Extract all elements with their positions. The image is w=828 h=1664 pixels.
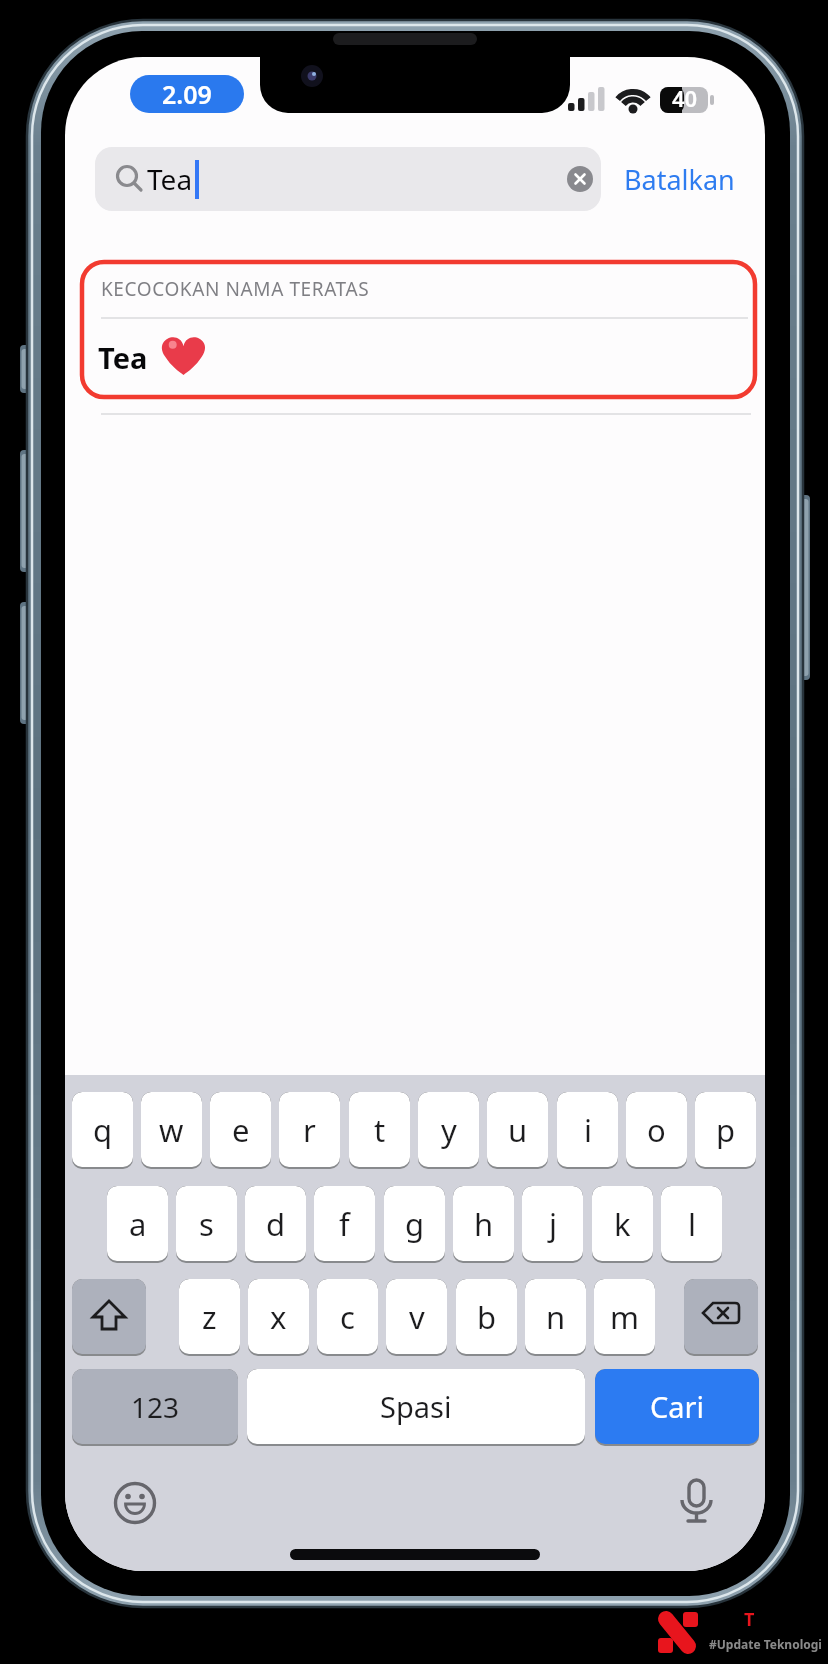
button[interactable]: a: [107, 1186, 168, 1263]
staticText: Cari: [650, 1387, 705, 1426]
staticText: KECOCOKAN NAMA TERATAS: [101, 276, 370, 302]
staticText: l: [688, 1203, 696, 1245]
button[interactable]: Spasi: [247, 1369, 585, 1446]
button[interactable]: [567, 166, 593, 192]
button[interactable]: g: [384, 1186, 445, 1263]
staticText: p: [716, 1109, 736, 1151]
staticText: w: [159, 1109, 184, 1151]
button[interactable]: Batalkan: [624, 147, 759, 211]
button[interactable]: k: [592, 1186, 653, 1263]
staticText: 123: [131, 1388, 180, 1426]
staticText: Tea: [98, 338, 148, 377]
staticText: j: [549, 1203, 557, 1245]
staticText: h: [474, 1203, 494, 1245]
button[interactable]: q: [72, 1092, 133, 1169]
staticText: c: [340, 1296, 355, 1338]
staticText: Batalkan: [624, 161, 735, 198]
button[interactable]: x: [248, 1279, 309, 1356]
button[interactable]: 123: [72, 1369, 238, 1446]
button[interactable]: l: [661, 1186, 722, 1263]
staticText: i: [584, 1109, 592, 1151]
button[interactable]: d: [245, 1186, 306, 1263]
staticText: T: [744, 1607, 755, 1627]
staticText: v: [409, 1296, 425, 1338]
staticText: g: [405, 1203, 425, 1245]
button[interactable]: i: [557, 1092, 618, 1169]
button[interactable]: Cari: [595, 1369, 759, 1446]
staticText: x: [270, 1296, 287, 1338]
button[interactable]: f: [314, 1186, 375, 1263]
button[interactable]: m: [594, 1279, 655, 1356]
button[interactable]: o: [626, 1092, 687, 1169]
staticText: d: [266, 1203, 286, 1245]
button[interactable]: y: [418, 1092, 479, 1169]
button[interactable]: h: [453, 1186, 514, 1263]
button[interactable]: s: [176, 1186, 237, 1263]
button[interactable]: z: [179, 1279, 240, 1356]
button[interactable]: v: [386, 1279, 447, 1356]
button[interactable]: p: [695, 1092, 756, 1169]
button[interactable]: e: [210, 1092, 271, 1169]
staticText: b: [477, 1296, 497, 1338]
staticText: u: [508, 1109, 528, 1151]
staticText: o: [647, 1109, 666, 1151]
button[interactable]: Tea: [95, 147, 601, 211]
button[interactable]: [684, 1279, 758, 1356]
staticText: q: [93, 1109, 113, 1151]
staticText: 2.09: [162, 77, 212, 111]
staticText: Spasi: [380, 1387, 452, 1426]
button[interactable]: b: [456, 1279, 517, 1356]
button[interactable]: c: [317, 1279, 378, 1356]
button[interactable]: n: [525, 1279, 586, 1356]
button[interactable]: u: [487, 1092, 548, 1169]
staticText: m: [610, 1296, 639, 1338]
staticText: f: [339, 1203, 350, 1245]
button[interactable]: t: [349, 1092, 410, 1169]
button[interactable]: [72, 1279, 146, 1356]
staticText: n: [546, 1296, 566, 1338]
button[interactable]: r: [279, 1092, 340, 1169]
staticText: z: [202, 1296, 217, 1338]
staticText: t: [374, 1109, 386, 1151]
staticText: Tea: [147, 160, 193, 198]
button[interactable]: w: [141, 1092, 202, 1169]
button[interactable]: 2.09: [130, 75, 244, 113]
staticText: k: [614, 1203, 631, 1245]
staticText: s: [199, 1203, 214, 1245]
staticText: 40: [672, 83, 698, 113]
staticText: e: [232, 1109, 250, 1151]
staticText: y: [441, 1109, 457, 1151]
button[interactable]: [113, 1481, 157, 1525]
button[interactable]: Tea: [98, 333, 298, 381]
staticText: r: [303, 1109, 316, 1151]
staticText: #Update Teknologi: [709, 1636, 822, 1652]
staticText: a: [129, 1203, 147, 1245]
button[interactable]: j: [522, 1186, 583, 1263]
button[interactable]: [673, 1478, 721, 1526]
